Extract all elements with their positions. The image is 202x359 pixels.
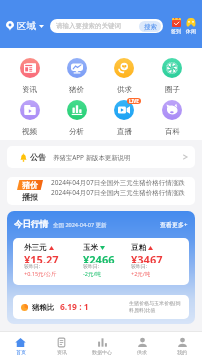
staticText: 首页 bbox=[16, 349, 26, 355]
staticText: 2024年04月07日全国内三元生猪价格行情涨跌表 bbox=[51, 188, 190, 198]
staticText: 供求 bbox=[137, 349, 147, 355]
button[interactable]: 玉米 bbox=[72, 243, 120, 278]
staticText: 数据中心 bbox=[92, 349, 112, 355]
staticText: +2元/吨 bbox=[131, 270, 151, 278]
staticText: -2元/吨 bbox=[83, 270, 101, 278]
button[interactable]: 豆粕 bbox=[120, 243, 189, 278]
button[interactable]: 数据中心 bbox=[82, 335, 122, 357]
staticText: 较昨日: bbox=[24, 263, 41, 270]
staticText: 直播 bbox=[117, 127, 132, 136]
staticText: 休闲 bbox=[186, 28, 196, 34]
button[interactable]: 供求 bbox=[100, 58, 148, 94]
staticText: +0.15元/公斤 bbox=[24, 270, 57, 278]
staticText: 我的 bbox=[177, 349, 187, 355]
button[interactable]: 请输入要搜索的关键词 bbox=[50, 19, 163, 33]
staticText: 分析 bbox=[69, 127, 84, 136]
staticText: 生猪价格与玉米价格(饲 bbox=[129, 300, 181, 307]
staticText: 签到 bbox=[171, 28, 181, 34]
staticText: 圈子 bbox=[165, 85, 180, 94]
staticText: 玉米 bbox=[83, 243, 98, 252]
staticText: 养猪宝APP 新版本更新说明 bbox=[53, 153, 183, 162]
button[interactable]: 百科 bbox=[148, 100, 196, 136]
staticText: LIVE bbox=[129, 98, 139, 104]
button[interactable]: 资讯 bbox=[6, 58, 53, 94]
staticText: 6.19 : 1 bbox=[60, 301, 89, 313]
button[interactable]: 区域 bbox=[5, 17, 45, 35]
staticText: 2024年04月07日全国外三元生猪价格行情涨跌表 bbox=[51, 178, 190, 188]
staticText: 请输入要搜索的关键词 bbox=[56, 22, 121, 30]
button[interactable]: 猪粮比 bbox=[13, 295, 189, 319]
button[interactable]: 我的 bbox=[162, 335, 202, 357]
button[interactable]: LIVE bbox=[100, 100, 148, 136]
staticText: ¥15.27 bbox=[24, 252, 59, 263]
staticText: 搜索 bbox=[144, 23, 157, 31]
staticText: 猪价 bbox=[22, 180, 39, 190]
button[interactable]: 公告 bbox=[7, 146, 195, 168]
staticText: 豆粕 bbox=[131, 243, 146, 252]
staticText: 视频 bbox=[22, 127, 37, 136]
staticText: 外三元 bbox=[24, 243, 47, 252]
button[interactable]: 休闲 bbox=[186, 18, 196, 34]
button[interactable]: 查看更多+ bbox=[160, 221, 188, 229]
button[interactable]: 首页 bbox=[0, 335, 41, 357]
staticText: ¥3467 bbox=[131, 252, 163, 263]
button[interactable]: 视频 bbox=[6, 100, 53, 136]
staticText: 猪粮比 bbox=[32, 303, 55, 312]
staticText: 料原料)比值 bbox=[129, 307, 156, 314]
staticText: 百科 bbox=[165, 127, 180, 136]
staticText: 播报 bbox=[22, 192, 39, 202]
button[interactable]: 分析 bbox=[53, 100, 100, 136]
staticText: 今日行情 bbox=[14, 219, 48, 230]
button[interactable]: 猪价 bbox=[53, 58, 100, 94]
staticText: 较昨日: bbox=[131, 263, 148, 270]
button[interactable]: 圈子 bbox=[148, 58, 196, 94]
staticText: 区域 bbox=[17, 20, 36, 32]
button[interactable]: 搜索 bbox=[139, 21, 161, 32]
staticText: 全国 2024-04-07 更新 bbox=[53, 221, 107, 229]
button[interactable]: 供求 bbox=[122, 335, 162, 357]
button[interactable]: 资讯 bbox=[41, 335, 82, 357]
staticText: 供求 bbox=[117, 85, 132, 94]
staticText: 查看更多+ bbox=[160, 221, 188, 229]
staticText: 猪价 bbox=[69, 85, 84, 94]
staticText: 公告 bbox=[30, 152, 47, 162]
staticText: 较昨日: bbox=[83, 263, 100, 270]
button[interactable]: 猪价 bbox=[7, 177, 195, 205]
staticText: 资讯 bbox=[22, 85, 37, 94]
staticText: 资讯 bbox=[57, 349, 67, 355]
button[interactable]: 外三元 bbox=[13, 243, 72, 278]
button[interactable]: 签到 bbox=[171, 18, 181, 34]
staticText: ¥2466 bbox=[83, 252, 115, 263]
